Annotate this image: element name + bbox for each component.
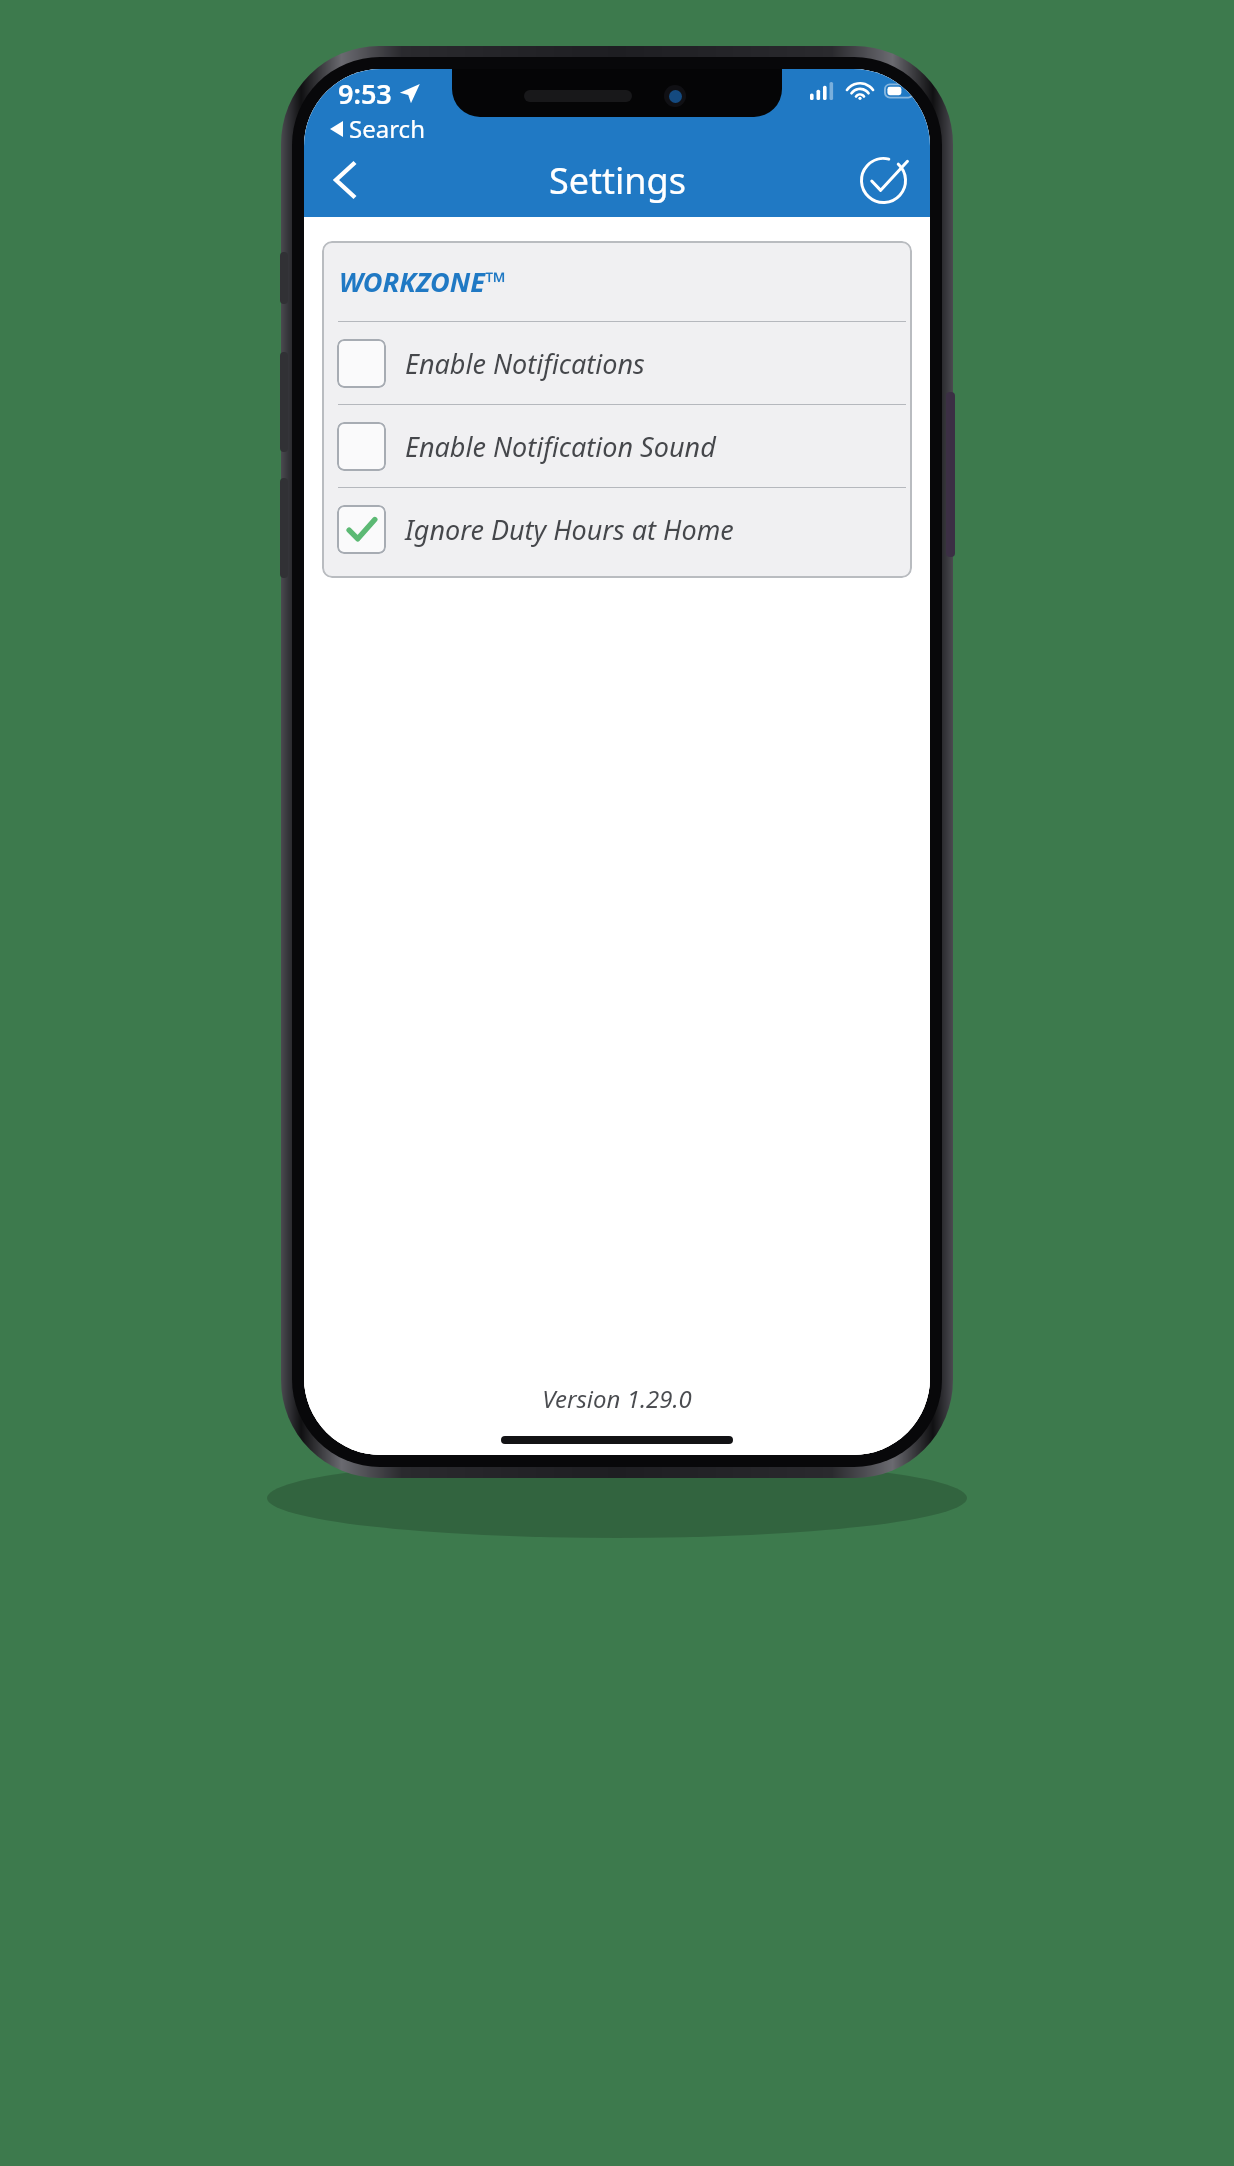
- staticText: Search: [349, 112, 425, 145]
- staticText: Enable Notifications: [405, 345, 645, 382]
- staticText: Version 1.29.0: [304, 1382, 930, 1415]
- button[interactable]: Search: [330, 112, 425, 145]
- staticText: Settings: [549, 156, 686, 205]
- staticText: Enable Notification Sound: [405, 428, 716, 465]
- staticText: WORKZONE™: [339, 263, 506, 300]
- button[interactable]: Enable Notification Sound: [322, 405, 912, 487]
- staticText: Ignore Duty Hours at Home: [405, 511, 734, 548]
- button[interactable]: Enable Notifications: [322, 322, 912, 404]
- button[interactable]: Ignore Duty Hours at Home: [322, 488, 912, 570]
- button[interactable]: Back: [314, 150, 374, 210]
- button[interactable]: Save: [852, 149, 914, 211]
- staticText: 9:53: [338, 75, 392, 112]
